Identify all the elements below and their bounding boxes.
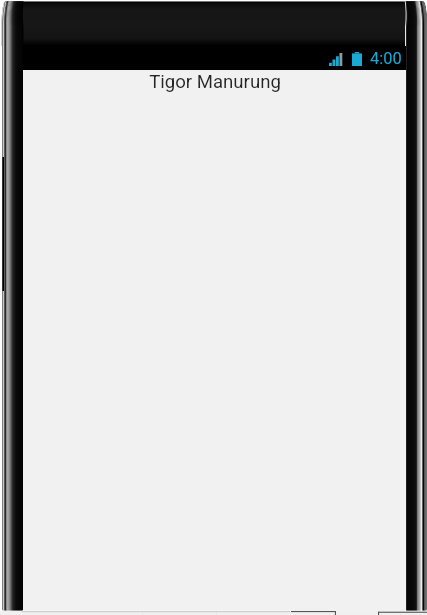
other: Mobile signal strength bbox=[329, 53, 343, 66]
button[interactable]: Tigor Manurung bbox=[149, 71, 281, 93]
staticText: 4:00 bbox=[370, 49, 402, 68]
other: Battery level bbox=[352, 52, 362, 66]
